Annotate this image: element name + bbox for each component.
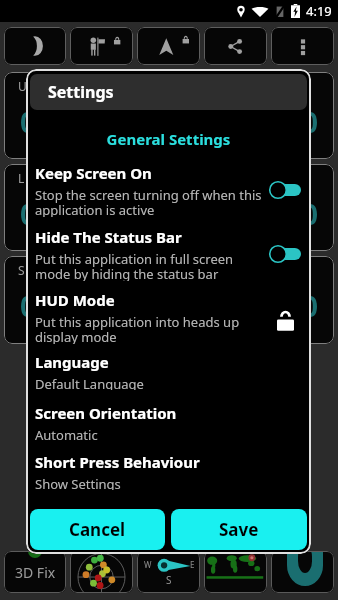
- button[interactable]: Cancel: [30, 509, 165, 550]
- button[interactable]: Compass: [137, 551, 200, 593]
- staticText: Cancel: [69, 518, 126, 541]
- button[interactable]: Waypoint lock: [70, 27, 133, 65]
- staticText: Short Press Behaviour: [35, 452, 200, 472]
- button[interactable]: Speed: [271, 551, 334, 593]
- button[interactable]: Share: [204, 27, 267, 65]
- staticText: Stop the screen turning off when this ap…: [35, 186, 262, 217]
- button[interactable]: HUD Mode: [30, 290, 307, 344]
- staticText: Settings: [48, 81, 114, 103]
- staticText: U: [18, 78, 27, 94]
- staticText: Automatic: [35, 426, 98, 441]
- staticText: Keep Screen On: [35, 163, 152, 183]
- staticText: W: [144, 559, 152, 570]
- staticText: Put this application in full screen mode…: [35, 250, 234, 281]
- button[interactable]: More options: [271, 27, 334, 65]
- staticText: 0.000000: [20, 195, 140, 233]
- staticText: 0.000000: [20, 103, 140, 141]
- button[interactable]: L: [4, 164, 334, 251]
- staticText: Show Settings: [35, 475, 121, 490]
- staticText: Screen Orientation: [35, 403, 177, 423]
- staticText: Default Language: [35, 375, 144, 390]
- staticText: Save: [219, 518, 259, 541]
- staticText: 0.000000: [198, 195, 318, 233]
- staticText: Hide The Status Bar: [35, 227, 182, 247]
- button[interactable]: World map: [204, 551, 267, 593]
- staticText: E: [190, 559, 195, 570]
- button[interactable]: Night mode: [4, 27, 66, 65]
- button[interactable]: Hide The Status Bar: [30, 227, 307, 281]
- button[interactable]: Navigation lock: [137, 27, 200, 65]
- button[interactable]: Keep Screen On: [30, 163, 307, 217]
- button[interactable]: Short Press Behaviour: [30, 452, 307, 490]
- staticText: Put this application into heads up displ…: [35, 313, 240, 344]
- staticText: 0.000000: [198, 287, 318, 325]
- button[interactable]: Language: [30, 352, 307, 390]
- button[interactable]: Screen Orientation: [30, 403, 307, 441]
- staticText: 0.000000: [20, 287, 140, 325]
- button[interactable]: GPS fix status: [4, 551, 66, 593]
- staticText: L: [18, 170, 25, 186]
- staticText: 0.000000: [198, 103, 318, 141]
- button[interactable]: U: [4, 72, 334, 159]
- staticText: 4:19: [306, 2, 332, 20]
- staticText: HUD Mode: [35, 290, 115, 310]
- staticText: S: [166, 573, 172, 587]
- staticText: Language: [35, 352, 109, 372]
- staticText: 3D Fix: [15, 563, 56, 582]
- button[interactable]: S: [4, 256, 334, 344]
- staticText: S: [18, 262, 25, 278]
- button[interactable]: Satellite sky view: [70, 551, 133, 593]
- button[interactable]: Save: [171, 509, 307, 550]
- staticText: General Settings: [26, 129, 311, 149]
